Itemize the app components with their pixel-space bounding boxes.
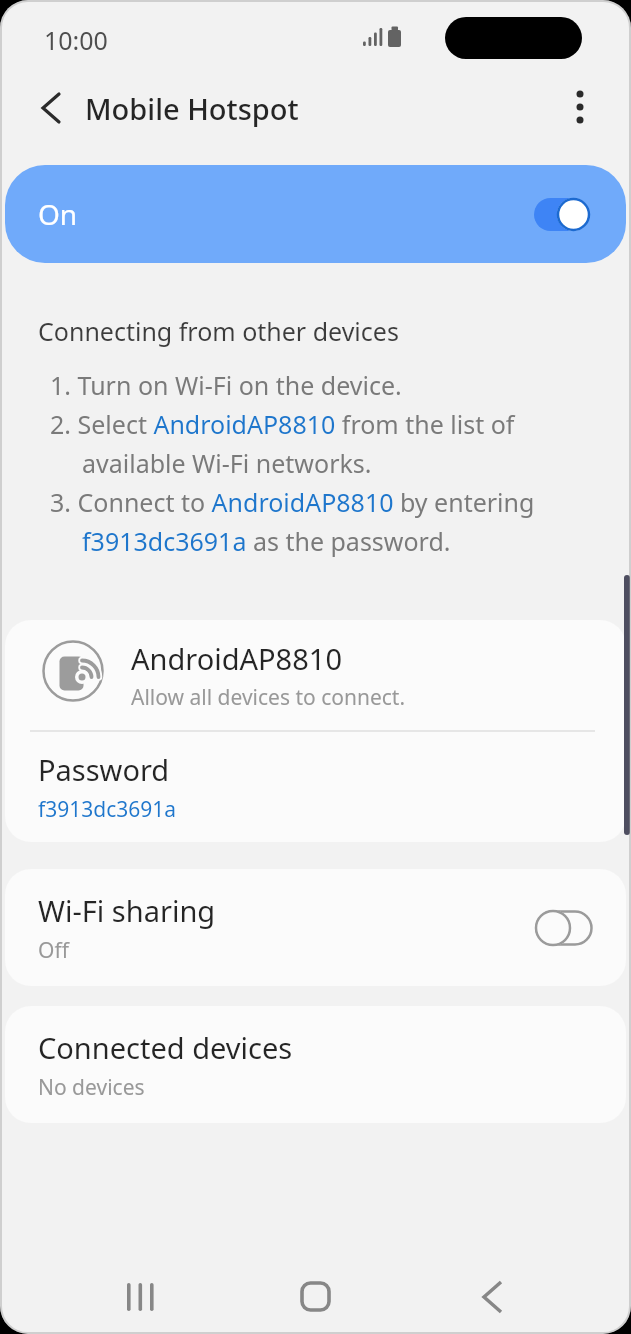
button[interactable]: On xyxy=(5,165,626,263)
button[interactable] xyxy=(465,1272,515,1322)
staticText: 2. Select AndroidAP8810 from the list of xyxy=(50,407,515,441)
button[interactable]: AndroidAP8810 xyxy=(5,620,626,730)
button[interactable]: Connected devices xyxy=(5,1006,626,1123)
staticText: available Wi-Fi networks. xyxy=(82,446,372,480)
staticText: f3913dc3691a as the password. xyxy=(82,524,451,558)
staticText: Password xyxy=(38,750,170,789)
staticText: Off xyxy=(38,936,69,965)
button[interactable] xyxy=(115,1272,165,1322)
staticText: Mobile Hotspot xyxy=(85,89,299,128)
staticText: On xyxy=(38,195,78,233)
staticText: AndroidAP8810 xyxy=(131,639,342,678)
button[interactable]: Password xyxy=(5,732,626,842)
staticText: 3. Connect to AndroidAP8810 by entering xyxy=(50,485,535,519)
staticText: Wi-Fi sharing xyxy=(38,891,216,930)
staticText: Connected devices xyxy=(38,1028,293,1067)
staticText: Connecting from other devices xyxy=(38,314,399,348)
staticText: 1. Turn on Wi-Fi on the device. xyxy=(50,368,402,402)
button[interactable] xyxy=(290,1272,340,1322)
staticText: No devices xyxy=(38,1073,145,1102)
button[interactable] xyxy=(558,85,602,129)
button[interactable] xyxy=(28,85,72,129)
staticText: 10:00 xyxy=(44,23,108,57)
staticText: Allow all devices to connect. xyxy=(131,683,406,712)
staticText: f3913dc3691a xyxy=(38,795,177,824)
button[interactable]: Wi-Fi sharing xyxy=(5,869,626,986)
